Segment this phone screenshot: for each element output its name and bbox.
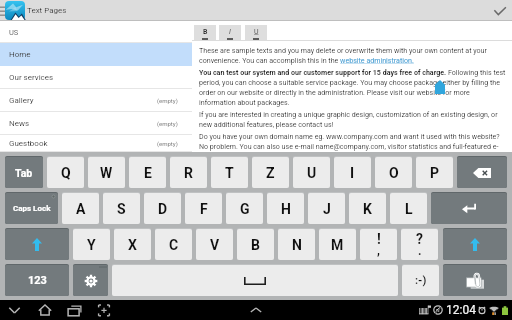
button[interactable]: :-) (402, 265, 439, 296)
staticText: M (331, 237, 344, 253)
button[interactable]: N (278, 229, 315, 260)
button[interactable]: L (390, 193, 427, 224)
staticText: J (323, 201, 331, 217)
staticText: You can test our system and our customer… (199, 68, 506, 107)
staticText: I (350, 165, 355, 181)
button[interactable]: X (114, 229, 151, 260)
staticText: V (210, 237, 220, 253)
button[interactable]: Tab (5, 157, 43, 188)
button[interactable]: Q (47, 157, 84, 188)
button[interactable]: I (219, 25, 241, 41)
staticText: US (9, 28, 19, 37)
button[interactable]: Caps Lock (5, 193, 58, 224)
button[interactable]: ! (360, 229, 397, 260)
button[interactable]: Y (73, 229, 110, 260)
staticText: B (251, 237, 260, 253)
staticText: Z (266, 165, 275, 181)
staticText: (empty) (157, 140, 178, 147)
button[interactable]: T (211, 157, 248, 188)
staticText: X (128, 237, 137, 253)
button[interactable]: C (155, 229, 192, 260)
staticText: ? (416, 231, 423, 247)
button[interactable]: S (103, 193, 140, 224)
button[interactable]: R (170, 157, 207, 188)
staticText: Home (9, 50, 31, 59)
staticText: P (430, 165, 440, 181)
staticText: A (76, 201, 86, 217)
button[interactable]: Settings (73, 265, 108, 296)
staticText: R (184, 165, 193, 181)
staticText: (empty) (157, 97, 178, 104)
button[interactable]: E (129, 157, 166, 188)
button[interactable]: Shift (5, 229, 69, 260)
staticText: U (254, 28, 259, 36)
button[interactable]: Z (252, 157, 289, 188)
staticText: K (363, 201, 372, 217)
button[interactable]: J (308, 193, 345, 224)
button[interactable]: U (293, 157, 330, 188)
button[interactable]: Guestbook (0, 135, 192, 152)
staticText: T (225, 165, 234, 181)
staticText: C (169, 237, 179, 253)
staticText: Gallery (9, 96, 34, 105)
button[interactable]: Backspace (457, 157, 507, 188)
button[interactable]: U (245, 25, 267, 41)
staticText: N (292, 237, 302, 253)
staticText: D (158, 201, 168, 217)
staticText: Q (61, 165, 71, 181)
button[interactable]: 123 (5, 265, 69, 296)
button[interactable]: M (319, 229, 356, 260)
button[interactable]: B (194, 25, 216, 41)
button[interactable]: Home (35, 300, 55, 320)
staticText: S (117, 201, 126, 217)
staticText: Caps Lock (13, 204, 51, 213)
staticText: , (377, 244, 380, 258)
button[interactable]: I (334, 157, 371, 188)
button[interactable]: Gallery (0, 89, 192, 112)
button[interactable]: ? (401, 229, 438, 260)
staticText: L (405, 201, 413, 217)
button[interactable]: O (375, 157, 412, 188)
staticText: (empty) (157, 120, 178, 127)
button[interactable]: News (0, 112, 192, 135)
staticText: B (203, 28, 208, 36)
staticText: Y (87, 237, 96, 253)
button[interactable]: Shift (443, 229, 507, 260)
button[interactable]: Space (112, 265, 398, 296)
staticText: Tab (15, 167, 33, 179)
staticText: . (418, 244, 422, 258)
button[interactable]: W (88, 157, 125, 188)
staticText: F (200, 201, 208, 217)
button[interactable]: F (185, 193, 222, 224)
staticText: 12:04 (446, 303, 476, 317)
staticText: E (144, 165, 152, 181)
staticText: :-) (415, 274, 427, 287)
button[interactable]: Full screen (94, 300, 114, 320)
staticText: Guestbook (9, 139, 48, 148)
button[interactable]: H (267, 193, 304, 224)
staticText: Our services (9, 73, 54, 82)
staticText: U (307, 165, 317, 181)
staticText: News (9, 119, 30, 128)
staticText: Do you have your own domain name eg. www… (199, 132, 506, 151)
button[interactable]: Done (486, 0, 512, 21)
button[interactable]: US (0, 21, 192, 43)
staticText: H (281, 201, 291, 217)
button[interactable]: Recent apps (65, 300, 85, 320)
button[interactable]: Hide keyboard (5, 300, 25, 320)
button[interactable]: Our services (0, 66, 192, 89)
button[interactable]: G (226, 193, 263, 224)
button[interactable]: P (416, 157, 453, 188)
button[interactable]: Home (0, 43, 192, 66)
button[interactable]: K (349, 193, 386, 224)
staticText: Text Pages (27, 6, 67, 15)
button[interactable]: Enter (431, 193, 507, 224)
button[interactable]: Attach file (443, 265, 507, 296)
button[interactable]: A (62, 193, 99, 224)
staticText: G (240, 201, 250, 217)
button[interactable]: D (144, 193, 181, 224)
button[interactable]: V (196, 229, 233, 260)
staticText: 123 (28, 274, 47, 287)
button[interactable]: Navigation menu (0, 5, 5, 16)
button[interactable]: B (237, 229, 274, 260)
